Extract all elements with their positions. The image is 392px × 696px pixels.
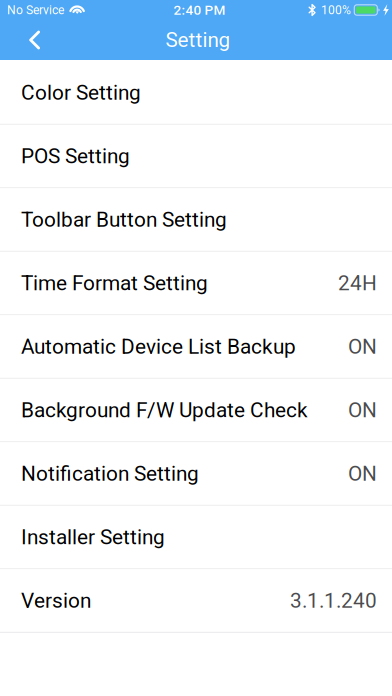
button[interactable]: Automatic Device List Backup [0,315,392,379]
staticText: Notification Setting [21,461,199,486]
staticText: ON [348,334,377,359]
staticText: Automatic Device List Backup [21,334,296,359]
staticText: 24H [338,271,377,295]
staticText: Setting [165,28,230,52]
staticText: Background F/W Update Check [21,398,308,422]
staticText: ON [348,398,377,422]
staticText: 3.1.1.240 [290,588,377,613]
staticText: Installer Setting [21,525,165,549]
button[interactable]: Toolbar Button Setting [0,188,392,252]
staticText: Time Format Setting [21,271,208,295]
staticText: Version [21,588,91,613]
staticText: 2:40 PM [173,2,225,18]
staticText: Color Setting [21,80,141,105]
button[interactable]: Back [0,20,56,60]
staticText: Toolbar Button Setting [21,207,227,232]
button[interactable]: POS Setting [0,125,392,188]
button[interactable]: Color Setting [0,61,392,125]
staticText: No Service [7,3,64,17]
button[interactable]: Installer Setting [0,506,392,569]
button[interactable]: Time Format Setting [0,252,392,315]
button[interactable]: Background F/W Update Check [0,379,392,442]
button[interactable]: Version [0,569,392,633]
staticText: ON [348,461,377,486]
staticText: 100% [321,3,351,17]
staticText: POS Setting [21,144,130,168]
button[interactable]: Notification Setting [0,442,392,506]
